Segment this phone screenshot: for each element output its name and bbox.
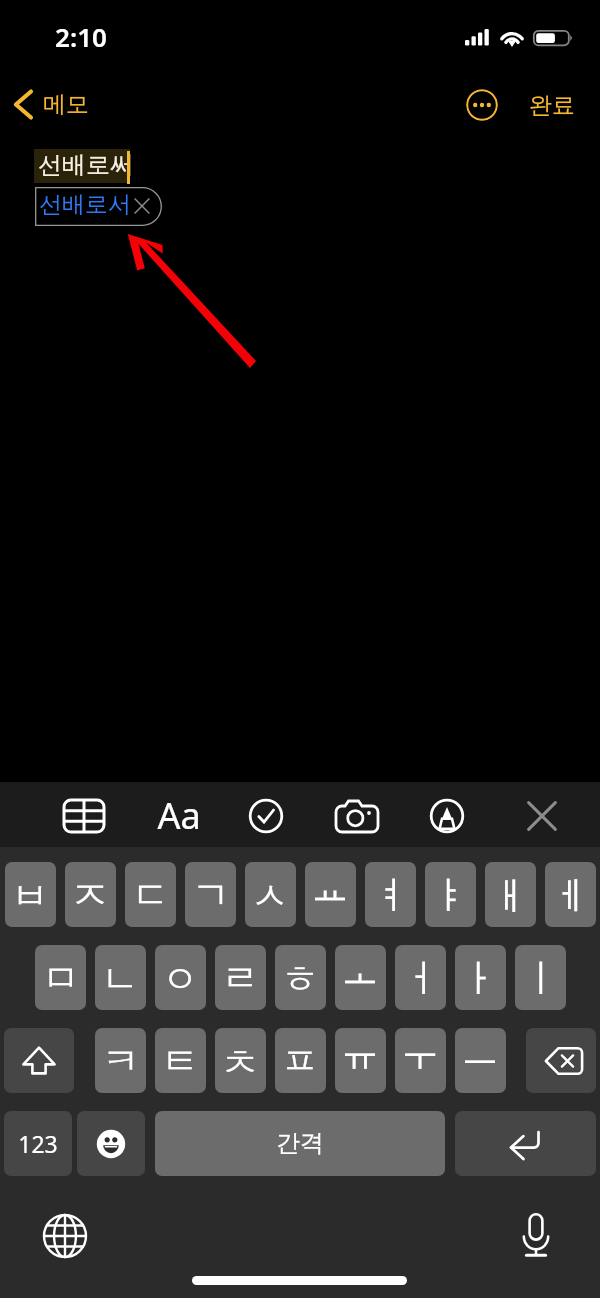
staticText: ㅂ xyxy=(11,872,49,920)
staticText: ㄱ xyxy=(192,871,230,919)
button[interactable]: Back to 메모 xyxy=(8,86,89,122)
staticText: 완료 xyxy=(529,91,575,120)
button[interactable]: ㅅ xyxy=(245,862,296,927)
staticText: ㅍ xyxy=(281,1037,319,1085)
button[interactable]: ㅔ xyxy=(545,862,596,927)
staticText: 메모 xyxy=(43,90,89,119)
button[interactable]: ㅎ xyxy=(275,945,326,1010)
button[interactable]: ㅜ xyxy=(395,1028,446,1093)
staticText: ㅋ xyxy=(102,1037,140,1085)
button[interactable]: ㅂ xyxy=(5,862,56,927)
staticText: ㅜ xyxy=(401,1029,439,1077)
staticText: ㅓ xyxy=(403,954,441,1002)
staticText: ㄷ xyxy=(132,871,170,919)
button[interactable]: ㅗ xyxy=(335,945,386,1010)
button[interactable]: Return xyxy=(455,1111,596,1176)
button[interactable]: ㅈ xyxy=(65,862,116,927)
button[interactable]: ㅠ xyxy=(335,1028,386,1093)
button[interactable]: Switch keyboard xyxy=(43,1214,87,1258)
button[interactable]: 선배로서 xyxy=(35,187,162,226)
staticText: ㅠ xyxy=(341,1029,379,1077)
staticText: Aa xyxy=(157,791,201,836)
button[interactable]: ㄷ xyxy=(125,862,176,927)
button[interactable]: Backspace xyxy=(526,1028,596,1093)
button[interactable]: 간격 xyxy=(155,1111,445,1176)
button[interactable]: Camera xyxy=(333,792,381,840)
staticText: ㅇ xyxy=(161,955,199,1003)
button[interactable]: ㄹ xyxy=(215,945,266,1010)
staticText: ㅕ xyxy=(373,871,411,919)
staticText: ㅣ xyxy=(522,954,560,1002)
staticText: ㅐ xyxy=(491,872,529,920)
button[interactable]: 완료 xyxy=(529,91,575,120)
button[interactable]: ㅓ xyxy=(395,945,446,1010)
staticText: ㅊ xyxy=(221,1039,259,1087)
staticText: ㄴ xyxy=(101,955,139,1003)
button[interactable]: ㄱ xyxy=(185,862,236,927)
button[interactable]: Emoji xyxy=(77,1111,145,1176)
button[interactable]: ㅌ xyxy=(155,1028,206,1093)
button[interactable]: ㅛ xyxy=(305,862,356,927)
button[interactable]: Checklist xyxy=(242,792,290,840)
staticText: ㅔ xyxy=(551,872,589,920)
staticText: 간격 xyxy=(276,1128,324,1158)
staticText: ㅑ xyxy=(430,871,468,919)
button[interactable]: ㅊ xyxy=(215,1028,266,1093)
button[interactable]: Table xyxy=(60,792,108,840)
button[interactable]: Markup xyxy=(423,792,471,840)
button[interactable]: Aa xyxy=(154,792,204,837)
staticText: ㅛ xyxy=(311,864,349,912)
staticText: ㅈ xyxy=(71,871,109,919)
staticText: 2:10 xyxy=(55,19,107,54)
button[interactable]: ㅣ xyxy=(515,945,566,1010)
button[interactable]: Shift xyxy=(4,1028,74,1093)
staticText: ㅎ xyxy=(281,955,319,1003)
button[interactable]: 123 xyxy=(4,1111,72,1176)
staticText: 선배로서 xyxy=(39,190,131,219)
staticText: 선배로써 xyxy=(38,150,134,180)
staticText: ㅏ xyxy=(460,954,498,1002)
button[interactable]: ㅐ xyxy=(485,862,536,927)
button[interactable]: ㅕ xyxy=(365,862,416,927)
staticText: ㅡ xyxy=(461,1028,499,1076)
button[interactable]: ㅁ xyxy=(35,945,86,1010)
staticText: ㅗ xyxy=(341,947,379,995)
staticText: ㅌ xyxy=(161,1037,199,1085)
button[interactable]: Dictation xyxy=(514,1210,558,1260)
button[interactable]: More options xyxy=(466,89,498,121)
staticText: 123 xyxy=(18,1128,58,1159)
button[interactable]: ㅏ xyxy=(455,945,506,1010)
staticText: ㄹ xyxy=(221,954,259,1002)
button[interactable]: ㅋ xyxy=(95,1028,146,1093)
button[interactable]: ㅑ xyxy=(425,862,476,927)
button[interactable]: ㅍ xyxy=(275,1028,326,1093)
staticText: ㅅ xyxy=(251,872,289,920)
button[interactable]: Close keyboard xyxy=(518,792,566,840)
button[interactable]: ㅇ xyxy=(155,945,206,1010)
button[interactable]: ㅡ xyxy=(455,1028,506,1093)
button[interactable]: ㄴ xyxy=(95,945,146,1010)
staticText: ㅁ xyxy=(42,954,80,1002)
